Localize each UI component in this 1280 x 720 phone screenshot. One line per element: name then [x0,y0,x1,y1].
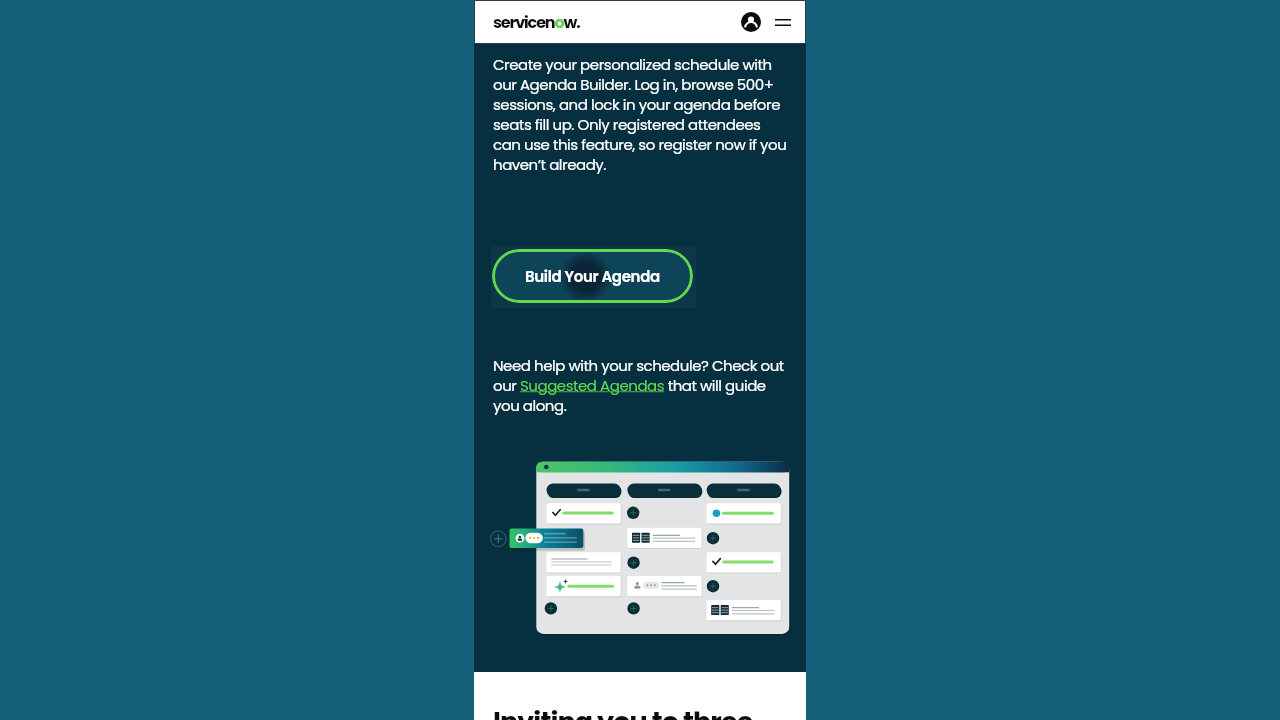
button[interactable]: Build Your Agenda [492,249,693,303]
button[interactable]: Account [738,9,764,35]
staticText: Need help with your schedule? Check out … [493,355,787,416]
button[interactable]: Suggested Agendas [520,375,664,393]
button[interactable]: ServiceNow home [493,11,580,33]
staticText: servicenow. [493,11,580,33]
staticText: Create your personalized schedule with o… [493,54,787,175]
button[interactable]: Menu [770,9,796,35]
staticText: Build Your Agenda [525,266,660,287]
staticText: Inviting you to three [493,703,753,720]
